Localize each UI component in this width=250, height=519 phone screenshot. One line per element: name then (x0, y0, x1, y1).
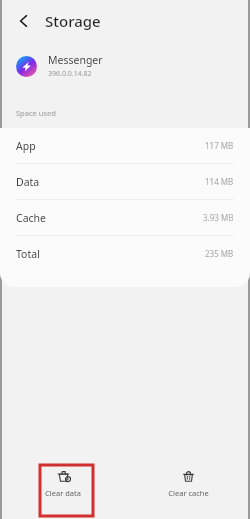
staticText: Data (16, 175, 40, 189)
staticText: Total (16, 247, 40, 261)
staticText: Space used (16, 108, 56, 118)
button[interactable]: App (0, 128, 250, 163)
button[interactable]: Back (10, 7, 38, 35)
staticText: 3.93 MB (203, 212, 234, 223)
staticText: 114 MB (205, 176, 234, 187)
staticText: Clear data (45, 488, 81, 498)
staticText: Storage (45, 11, 101, 31)
staticText: App (16, 139, 36, 153)
button[interactable]: Cache (0, 200, 250, 235)
staticText: 235 MB (205, 248, 234, 259)
staticText: Clear cache (168, 488, 209, 498)
staticText: Cache (16, 211, 46, 225)
staticText: 117 MB (205, 140, 234, 151)
button[interactable]: Data (0, 164, 250, 199)
staticText: 396.0.0.14.82 (48, 69, 92, 79)
staticText: Messenger (48, 53, 103, 67)
button[interactable]: Clear cache (158, 458, 218, 508)
button[interactable]: Total (0, 236, 250, 271)
button[interactable]: Clear data (36, 458, 90, 508)
